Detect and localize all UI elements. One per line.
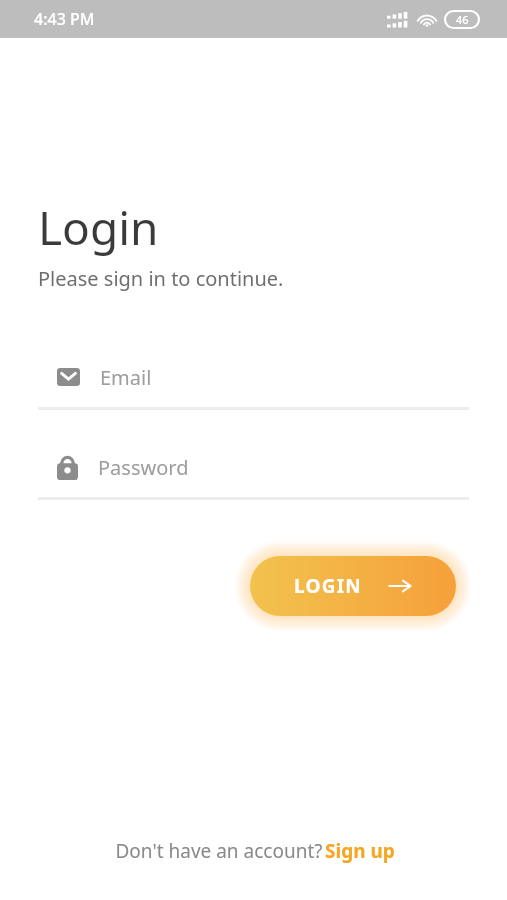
button[interactable]: LOGIN <box>250 556 456 616</box>
button[interactable]: Password <box>38 446 469 488</box>
staticText: Don't have an account? <box>113 838 325 864</box>
staticText: Password <box>98 454 189 481</box>
staticText: Please sign in to continue. <box>38 265 284 292</box>
other: Password <box>57 454 78 480</box>
staticText: 4:43 PM <box>34 8 95 30</box>
staticText: Email <box>100 364 152 391</box>
staticText: 46 <box>456 12 469 27</box>
staticText: LOGIN <box>294 573 362 599</box>
other: Email <box>57 368 80 386</box>
button[interactable]: Don't have an account? <box>113 838 395 864</box>
button[interactable]: Email <box>38 356 469 398</box>
staticText: Login <box>38 196 159 259</box>
staticText: Sign up <box>325 838 395 864</box>
